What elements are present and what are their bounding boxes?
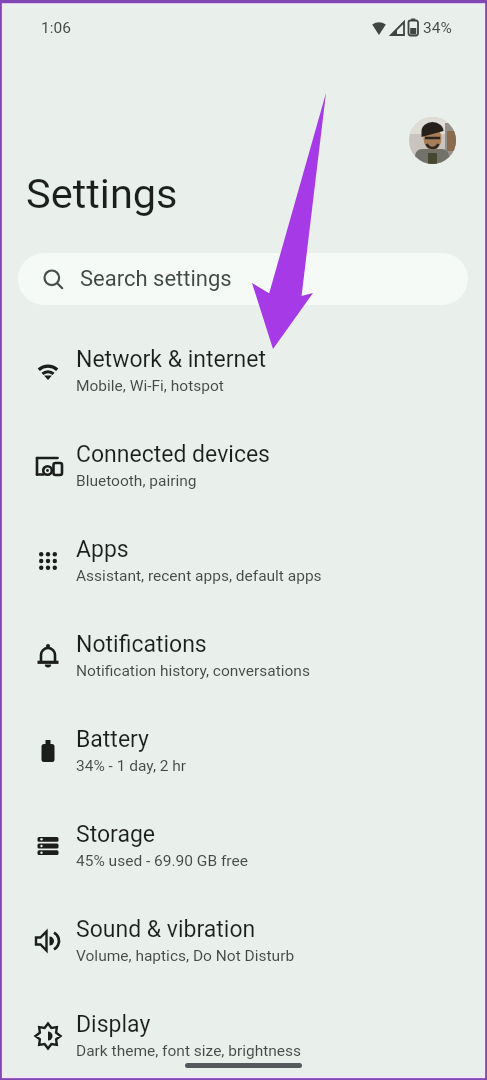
staticText: Connected devices: [76, 441, 270, 468]
staticText: Dark theme, font size, brightness: [76, 1042, 302, 1060]
button[interactable]: Notifications: [0, 608, 487, 703]
staticText: Network & internet: [76, 346, 266, 373]
button[interactable]: Sound & vibration: [0, 893, 487, 988]
button[interactable]: Display: [0, 988, 487, 1080]
staticText: 34%: [423, 19, 452, 37]
staticText: Settings: [26, 169, 178, 218]
button[interactable]: Battery: [0, 703, 487, 798]
button[interactable]: [409, 117, 456, 164]
staticText: Notifications: [76, 631, 207, 658]
staticText: Display: [76, 1011, 151, 1038]
staticText: Volume, haptics, Do Not Disturb: [76, 947, 295, 965]
staticText: Assistant, recent apps, default apps: [76, 567, 322, 585]
button[interactable]: Network & internet: [0, 323, 487, 418]
staticText: Sound & vibration: [76, 916, 256, 943]
button[interactable]: Storage: [0, 798, 487, 893]
staticText: Mobile, Wi-Fi, hotspot: [76, 377, 224, 395]
button[interactable]: Connected devices: [0, 418, 487, 513]
staticText: 34% - 1 day, 2 hr: [76, 757, 187, 775]
button[interactable]: Apps: [0, 513, 487, 608]
staticText: Search settings: [80, 266, 232, 292]
staticText: Storage: [76, 821, 156, 848]
button[interactable]: Search settings: [18, 253, 468, 305]
staticText: Notification history, conversations: [76, 662, 310, 680]
staticText: 1:06: [41, 19, 71, 37]
staticText: 45% used - 69.90 GB free: [76, 852, 248, 870]
staticText: Battery: [76, 726, 149, 753]
staticText: Bluetooth, pairing: [76, 472, 197, 490]
staticText: Apps: [76, 536, 129, 563]
